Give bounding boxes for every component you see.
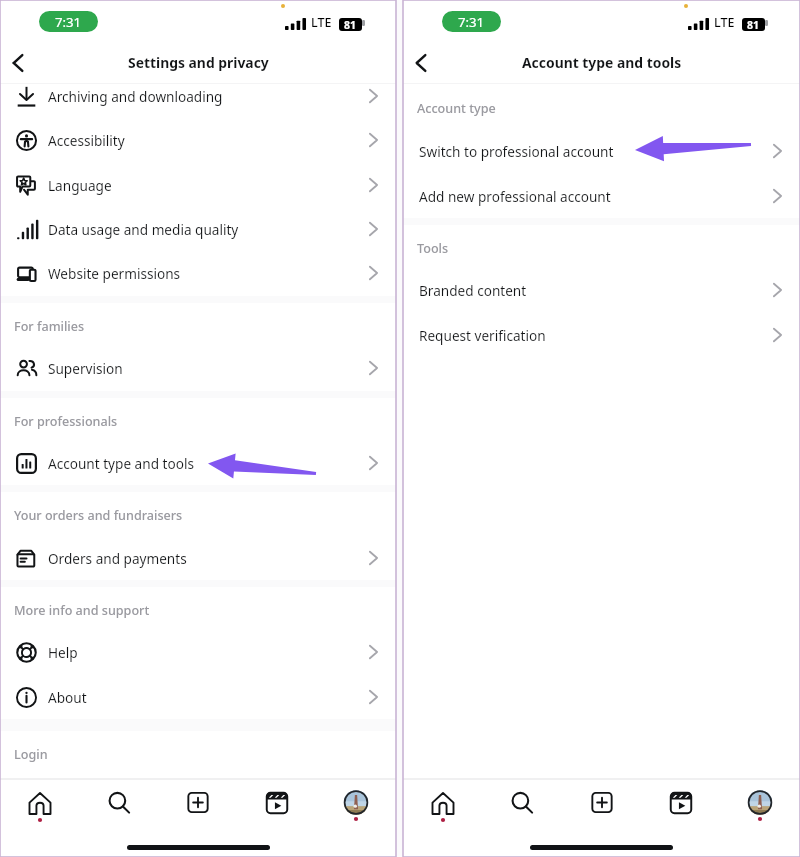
staticText: Account type (417, 100, 496, 117)
staticText: Login (14, 746, 48, 763)
button[interactable]: Back (6, 51, 30, 75)
staticText: 81 (344, 18, 357, 31)
button[interactable]: Reels (657, 780, 705, 826)
staticText: 7:31 (458, 13, 485, 31)
staticText: 7:31 (55, 13, 82, 31)
button[interactable]: Profile (332, 780, 380, 826)
staticText: Help (48, 643, 78, 662)
button[interactable]: Search (498, 780, 546, 826)
staticText: Account type and tools (48, 454, 194, 473)
staticText: For professionals (14, 413, 118, 430)
button[interactable]: Archiving and downloading (0, 84, 396, 118)
button[interactable]: Account type and tools (0, 441, 396, 485)
staticText: Branded content (419, 281, 527, 300)
staticText: Data usage and media quality (48, 220, 239, 239)
staticText: Account type and tools (522, 53, 682, 72)
button[interactable]: Branded content (403, 268, 800, 312)
button[interactable]: Home (16, 780, 64, 826)
staticText: Settings and privacy (128, 53, 269, 72)
button[interactable]: Search (95, 780, 143, 826)
button[interactable]: Request verification (403, 313, 800, 357)
staticText: About (48, 688, 87, 707)
button[interactable]: Orders and payments (0, 536, 396, 580)
button[interactable]: Accessibility (0, 118, 396, 162)
button[interactable]: Add new professional account (403, 174, 800, 218)
button[interactable]: Help (0, 630, 396, 674)
button[interactable]: Home (419, 780, 467, 826)
staticText: More info and support (14, 602, 150, 619)
staticText: Your orders and fundraisers (14, 507, 183, 524)
button[interactable]: Website permissions (0, 251, 396, 295)
staticText: Accessibility (48, 131, 125, 150)
staticText: LTE (311, 14, 332, 31)
button[interactable]: Reels (253, 780, 301, 826)
button[interactable]: Create (174, 780, 222, 826)
button[interactable]: About (0, 675, 396, 719)
staticText: LTE (714, 14, 735, 31)
button[interactable]: Data usage and media quality (0, 207, 396, 251)
button[interactable]: Switch to professional account (403, 129, 800, 173)
button[interactable]: Supervision (0, 346, 396, 390)
staticText: 81 (747, 18, 760, 31)
staticText: Add new professional account (419, 187, 611, 206)
staticText: For families (14, 318, 85, 335)
staticText: Request verification (419, 326, 546, 345)
staticText: Switch to professional account (419, 142, 614, 161)
staticText: Orders and payments (48, 549, 187, 568)
staticText: Archiving and downloading (48, 87, 223, 106)
staticText: Tools (417, 240, 449, 257)
button[interactable]: Back (409, 51, 433, 75)
staticText: Supervision (48, 359, 123, 378)
staticText: Language (48, 176, 112, 195)
button[interactable]: Create (578, 780, 626, 826)
button[interactable]: Language (0, 163, 396, 207)
button[interactable]: Profile (736, 780, 784, 826)
staticText: Website permissions (48, 264, 181, 283)
